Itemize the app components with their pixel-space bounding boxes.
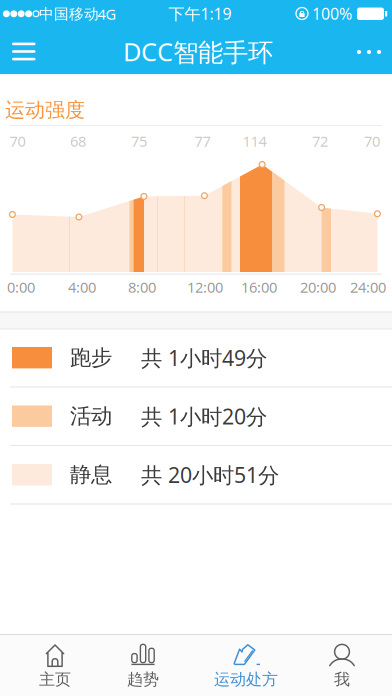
staticText: 活动 <box>70 403 112 429</box>
staticText: 24:00 <box>350 277 386 297</box>
staticText: 12:00 <box>187 277 223 297</box>
staticText: 68 <box>70 131 86 151</box>
staticText: 趋势 <box>127 670 159 689</box>
staticText: 运动处方 <box>214 670 278 689</box>
staticText: 共 1小时49分 <box>141 343 267 372</box>
staticText: 下午1:19 <box>168 3 231 24</box>
button[interactable]: 运动处方 <box>199 634 293 696</box>
staticText: 共 20小时51分 <box>141 460 279 489</box>
staticText: 静息 <box>70 462 112 488</box>
staticText: 0:00 <box>7 277 35 297</box>
button[interactable]: 我 <box>295 634 389 696</box>
staticText: 中国移动 <box>39 5 99 23</box>
staticText: 8:00 <box>128 277 156 297</box>
staticText: 跑步 <box>70 345 112 371</box>
button[interactable]: 趋势 <box>96 634 190 696</box>
button[interactable]: 主页 <box>8 634 102 696</box>
staticText: 运动强度 <box>5 98 85 122</box>
staticText: 114 <box>242 131 266 151</box>
staticText: 75 <box>131 131 147 151</box>
button[interactable]: More <box>349 32 389 72</box>
staticText: 100% <box>312 3 352 24</box>
staticText: 70 <box>9 131 25 151</box>
button[interactable]: Menu <box>2 31 46 71</box>
staticText: 77 <box>194 131 210 151</box>
staticText: 16:00 <box>241 277 277 297</box>
staticText: 72 <box>312 131 328 151</box>
staticText: 20:00 <box>300 277 336 297</box>
staticText: 4G <box>97 4 116 24</box>
staticText: 共 1小时20分 <box>141 402 267 430</box>
staticText: 主页 <box>39 670 71 689</box>
staticText: 4:00 <box>68 277 96 297</box>
staticText: 我 <box>334 670 350 689</box>
staticText: 70 <box>364 131 380 151</box>
staticText: DCC智能手环 <box>123 35 273 68</box>
